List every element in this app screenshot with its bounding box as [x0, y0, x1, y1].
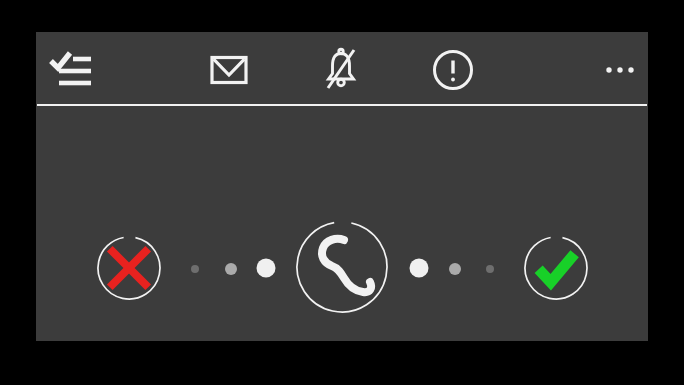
button[interactable]: Checklist	[47, 46, 95, 94]
button[interactable]: Call	[292, 217, 392, 317]
button[interactable]: More options	[596, 46, 644, 94]
button[interactable]: Mail	[205, 46, 253, 94]
button[interactable]: Alert	[429, 46, 477, 94]
button[interactable]: Notifications off	[317, 46, 365, 94]
button[interactable]: Decline call	[93, 232, 165, 304]
button[interactable]: Accept call	[520, 232, 592, 304]
